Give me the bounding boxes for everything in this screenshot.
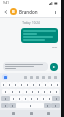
button[interactable]: Keyboard option bbox=[41, 75, 46, 80]
staticText: Sent bbox=[52, 45, 58, 48]
button[interactable]: Key bbox=[48, 82, 54, 87]
button[interactable]: Key bbox=[2, 89, 9, 94]
button[interactable]: Key bbox=[24, 82, 30, 87]
button[interactable]: Keyboard option bbox=[29, 75, 34, 80]
staticText: Brandon bbox=[19, 9, 38, 15]
button[interactable]: Keyboard option bbox=[35, 75, 40, 80]
button[interactable]: Key bbox=[12, 82, 18, 87]
staticText: B bbox=[12, 9, 15, 14]
button[interactable]: B bbox=[10, 8, 51, 15]
button[interactable] bbox=[21, 28, 58, 43]
button[interactable] bbox=[3, 62, 48, 71]
button[interactable]: Key bbox=[30, 82, 36, 87]
button[interactable]: More options bbox=[51, 8, 59, 16]
button[interactable]: Key bbox=[22, 96, 28, 101]
button[interactable]: Key bbox=[54, 82, 60, 87]
button[interactable]: Key bbox=[16, 96, 22, 101]
button[interactable]: Keyboard option bbox=[47, 75, 52, 80]
button[interactable]: Key bbox=[44, 103, 51, 108]
button[interactable]: Key bbox=[41, 89, 47, 94]
button[interactable]: Key bbox=[16, 103, 44, 108]
staticText: Today 10:24 bbox=[22, 21, 40, 25]
button[interactable]: Key bbox=[16, 89, 23, 94]
button[interactable]: Key bbox=[51, 103, 60, 108]
button[interactable]: Key bbox=[35, 89, 41, 94]
button[interactable]: Key bbox=[23, 89, 29, 94]
button[interactable]: Key bbox=[40, 96, 46, 101]
button[interactable]: Key bbox=[1, 82, 6, 87]
button[interactable]: Key bbox=[42, 82, 48, 87]
button[interactable]: Key bbox=[53, 89, 59, 94]
button[interactable]: Key bbox=[18, 82, 24, 87]
button[interactable]: Back bbox=[2, 8, 10, 16]
button[interactable]: Home bbox=[26, 110, 36, 117]
button[interactable]: Keyboard option bbox=[23, 75, 28, 80]
button[interactable]: Key bbox=[46, 96, 52, 101]
button[interactable]: Key bbox=[52, 96, 60, 101]
button[interactable]: Key bbox=[1, 103, 9, 108]
button[interactable]: Back bbox=[8, 110, 18, 117]
button[interactable]: Keyboard option bbox=[53, 75, 58, 80]
button[interactable]: Key bbox=[28, 96, 34, 101]
button[interactable]: Key bbox=[1, 96, 10, 101]
button[interactable]: Key bbox=[9, 103, 16, 108]
button[interactable]: Key bbox=[9, 89, 16, 94]
button[interactable]: Send bbox=[50, 63, 58, 71]
button[interactable]: Recents bbox=[43, 110, 53, 117]
button[interactable]: Key bbox=[47, 89, 53, 94]
button[interactable]: Key bbox=[34, 96, 40, 101]
button[interactable]: Keyboard tools bbox=[2, 74, 8, 80]
button[interactable]: Key bbox=[29, 89, 35, 94]
staticText: 9:41 bbox=[3, 1, 9, 5]
button[interactable]: Key bbox=[10, 96, 16, 101]
button[interactable]: Key bbox=[36, 82, 42, 87]
button[interactable]: Key bbox=[6, 82, 12, 87]
